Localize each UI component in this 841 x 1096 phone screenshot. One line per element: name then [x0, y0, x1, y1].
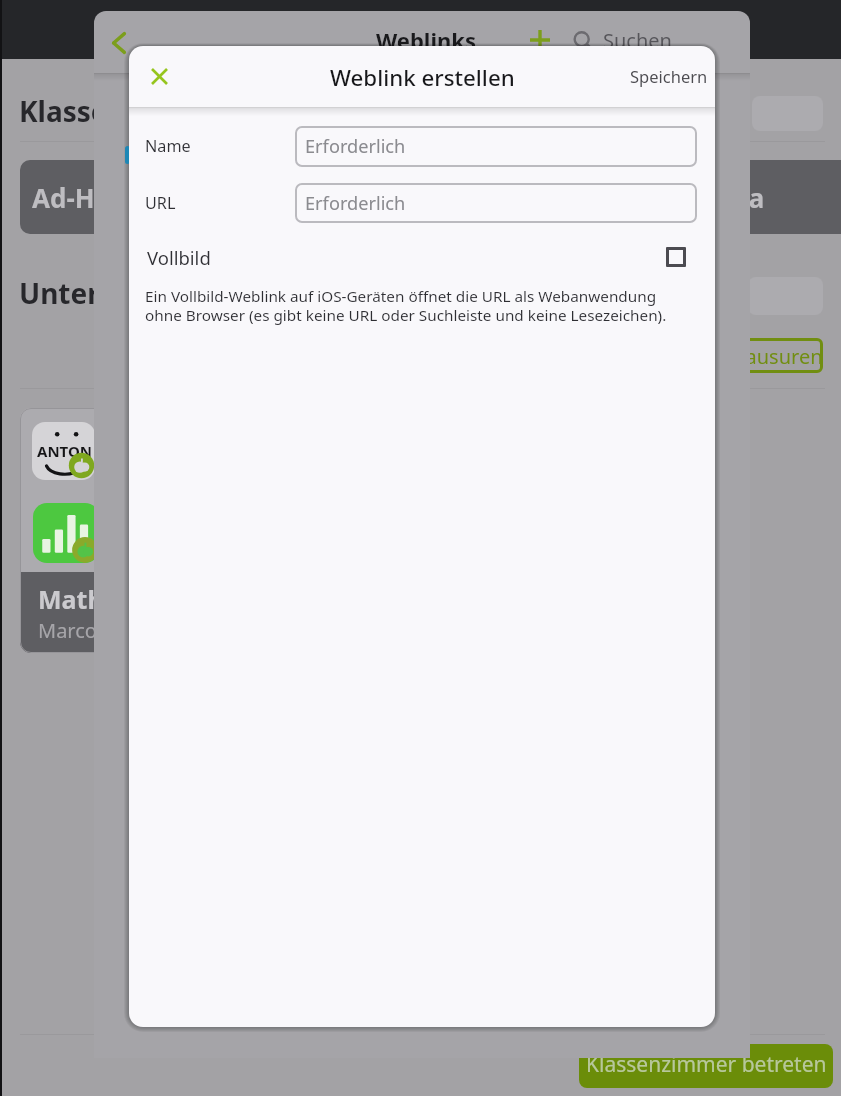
button[interactable]: ANTON [20, 408, 282, 653]
button[interactable]: Ad-Hoc Klassenarbeit erstellen und sofor… [20, 160, 841, 234]
staticText: Ad-Hoc Klassenarbeit erstellen und sofor… [32, 180, 765, 215]
staticText: Klausuren [728, 343, 823, 370]
staticText: Weblink erstellen [330, 62, 515, 92]
staticText: Erforderlich [305, 191, 406, 216]
staticText: Name [145, 135, 191, 157]
staticText: Weblinks [376, 25, 476, 55]
staticText: URL [145, 192, 176, 214]
staticText: Speichern [630, 65, 708, 87]
button[interactable]: Speichern [623, 54, 715, 98]
button[interactable]: Erforderlich [295, 183, 697, 223]
staticText: Klassenzimmer betreten [586, 1050, 827, 1079]
button[interactable]: Klassenzimmer betreten [579, 1044, 833, 1088]
staticText: ANTON [37, 441, 92, 461]
staticText: Mathe 9b [38, 582, 156, 616]
staticText: Klassenarbeiten [19, 92, 245, 130]
staticText: Unterrichtsmaterial [19, 274, 299, 312]
button[interactable]: Suchen [572, 27, 672, 54]
button[interactable]: Erforderlich [295, 126, 697, 167]
button[interactable]: Klausuren [690, 338, 823, 373]
staticText: Suchen [603, 27, 672, 54]
staticText: Vollbild [147, 245, 211, 270]
staticText: Marco Buchholz [38, 617, 189, 644]
staticText: Ein Vollbild-Weblink auf iOS-Geräten öff… [145, 286, 690, 325]
button[interactable]: Weblink hinzufügen [519, 19, 561, 61]
button[interactable]: Zurück [97, 21, 141, 65]
button[interactable]: Vollbild [129, 233, 715, 281]
button[interactable]: Schließen [137, 54, 182, 99]
staticText: Erforderlich [305, 134, 406, 159]
